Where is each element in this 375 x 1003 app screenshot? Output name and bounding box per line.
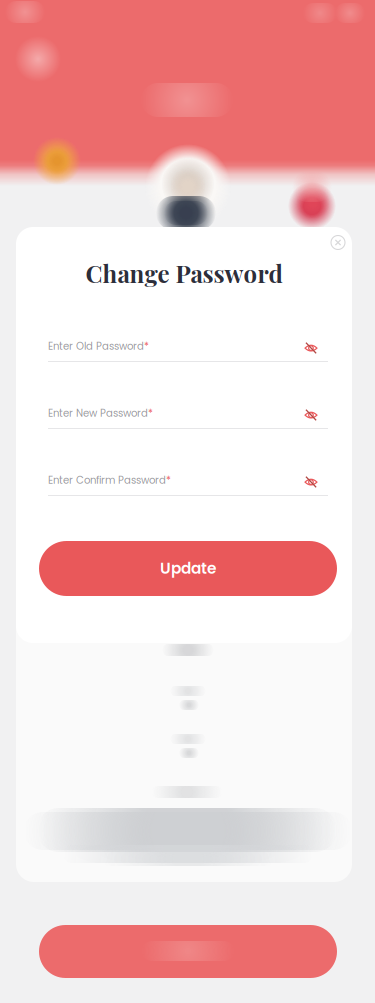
staticText: Update — [160, 558, 216, 579]
button[interactable]: Update — [39, 541, 337, 596]
staticText: Enter New Password — [48, 406, 148, 420]
staticText: * — [166, 473, 171, 487]
staticText: Enter Confirm Password — [48, 473, 166, 487]
button[interactable]: Toggle password visibility — [298, 403, 324, 427]
staticText: Enter Old Password — [48, 339, 144, 353]
button[interactable]: Close — [323, 227, 353, 257]
staticText: * — [148, 406, 153, 420]
button[interactable]: Toggle password visibility — [298, 470, 324, 494]
staticText: Change Password — [85, 257, 282, 289]
button[interactable]: Toggle password visibility — [298, 336, 324, 360]
staticText: * — [144, 339, 149, 353]
